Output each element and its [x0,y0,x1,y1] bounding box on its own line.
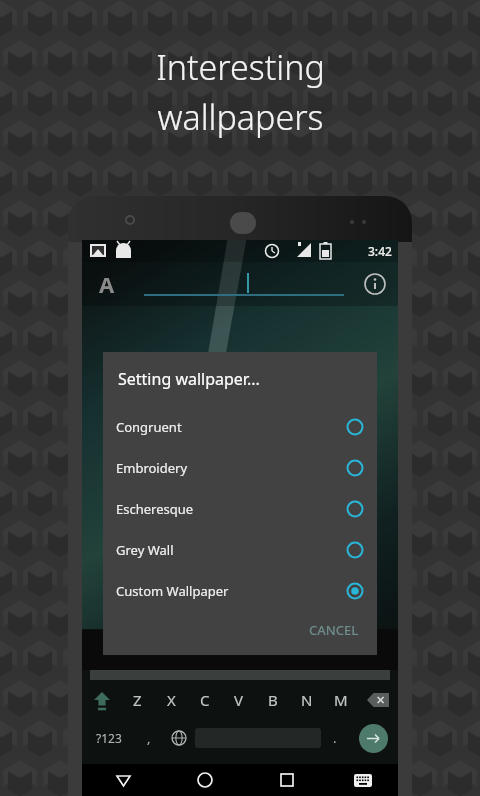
button[interactable]: Escheresque [103,488,377,529]
staticText: V [234,690,244,710]
button[interactable]: , [135,720,163,756]
button[interactable]: Shift [82,684,121,716]
staticText: Embroidery [116,459,188,477]
staticText: Z [133,690,142,710]
button[interactable]: N [290,684,324,716]
button[interactable]: Send [359,724,388,753]
button[interactable]: Grey Wall [103,529,377,570]
button[interactable]: Language [163,720,195,756]
staticText: B [268,690,278,710]
button[interactable]: Z [121,684,154,716]
staticText: Escheresque [116,500,194,518]
staticText: . [333,729,337,747]
button[interactable]: . [321,720,349,756]
button[interactable]: ?123 [82,720,135,756]
button[interactable]: V [222,684,256,716]
staticText: N [301,690,313,710]
staticText: ?123 [96,730,122,746]
staticText: , [147,729,151,747]
staticText: A [99,269,115,299]
button[interactable]: CANCEL [301,615,367,645]
button[interactable]: C [188,684,222,716]
button[interactable]: Custom Wallpaper [103,570,377,611]
button[interactable]: M [324,684,358,716]
staticText: Interesting [156,44,325,90]
staticText: CANCEL [309,621,359,639]
button[interactable]: App logo [92,269,122,299]
button[interactable] [144,269,344,299]
staticText: M [334,690,348,710]
button[interactable]: Recents [246,764,328,796]
button[interactable]: X [154,684,188,716]
staticText: X [167,690,176,710]
staticText: Congruent [116,418,182,436]
button[interactable]: Congruent [103,406,377,447]
staticText: 3:42 [368,243,392,259]
staticText: Setting wallpaper... [118,368,260,390]
staticText: Grey Wall [116,541,174,559]
staticText: wallpapers [157,94,324,140]
button[interactable]: Home [164,764,246,796]
button[interactable]: Embroidery [103,447,377,488]
button[interactable]: Back [82,764,164,796]
button[interactable]: Backspace [358,684,398,716]
button[interactable]: B [256,684,290,716]
button[interactable]: Info [360,269,390,299]
staticText: Custom Wallpaper [116,582,229,600]
button[interactable]: Keyboard [328,764,398,796]
staticText: C [200,690,210,710]
